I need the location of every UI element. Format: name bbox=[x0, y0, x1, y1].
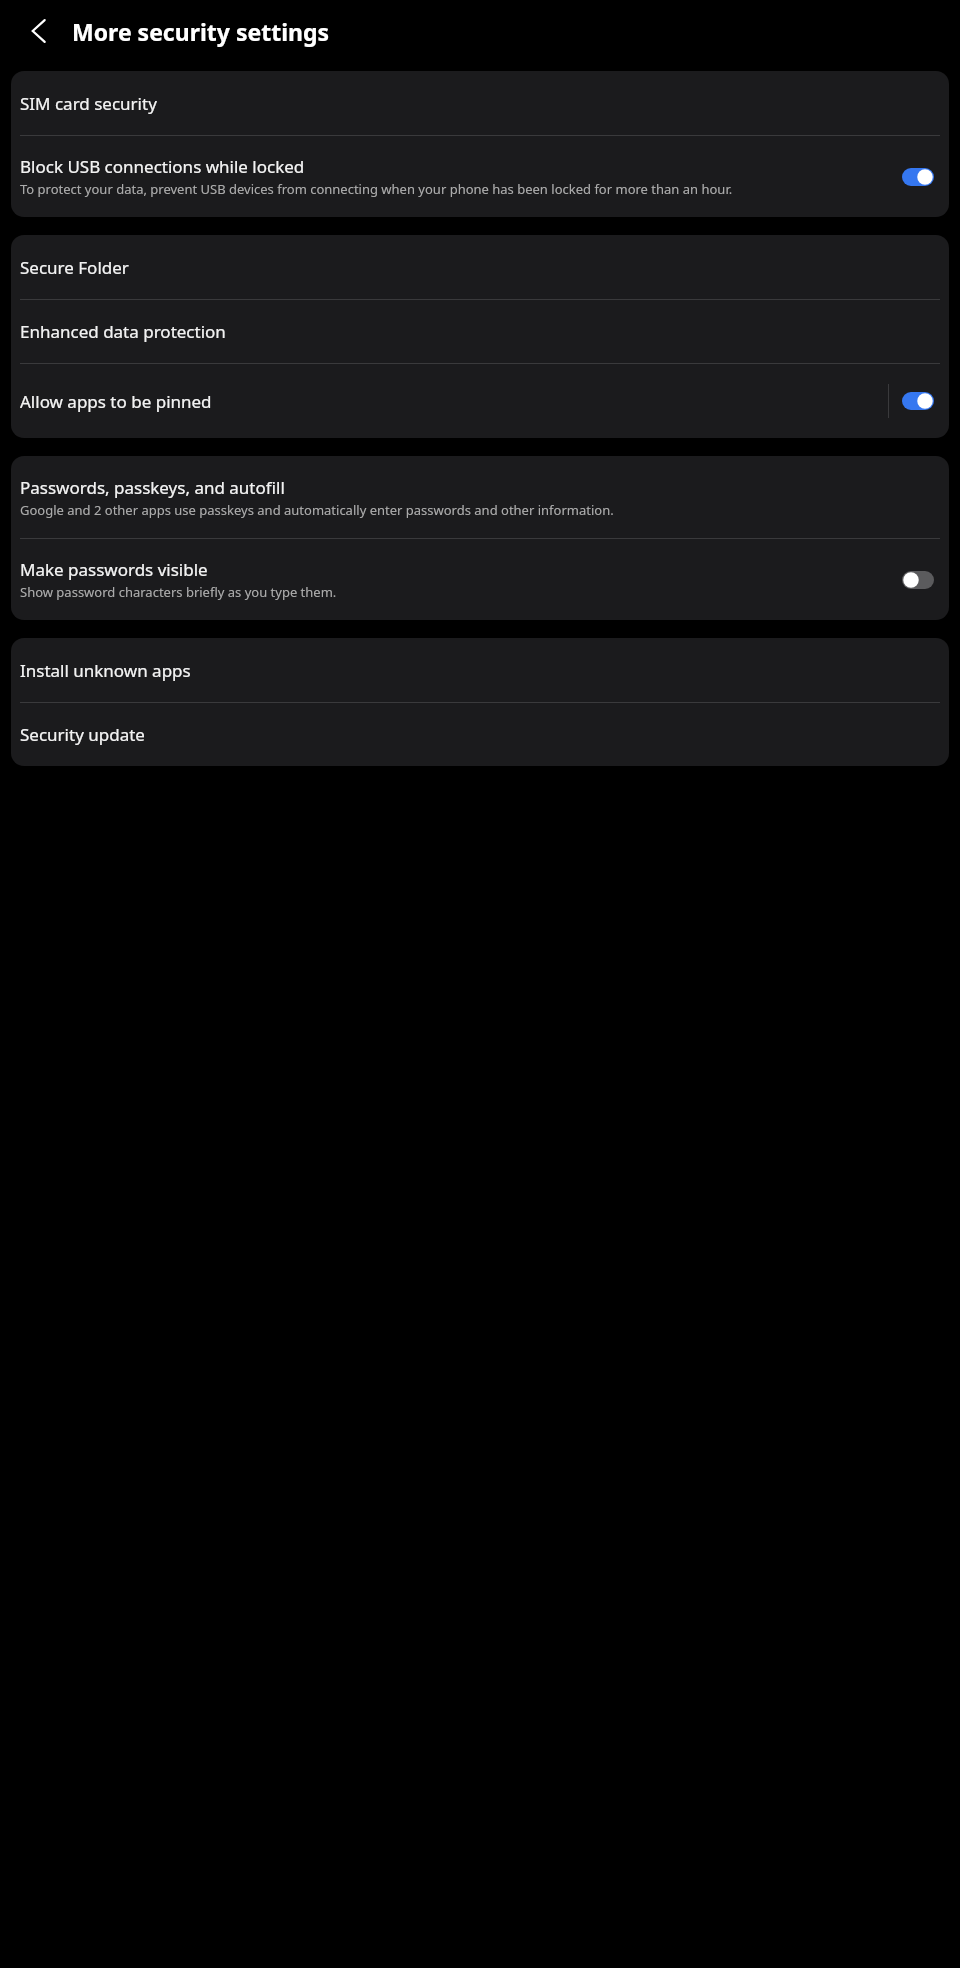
button[interactable]: On bbox=[895, 386, 941, 416]
staticText: Enhanced data protection bbox=[20, 320, 226, 343]
button[interactable]: Install unknown apps bbox=[11, 638, 949, 702]
button[interactable]: Make passwords visible bbox=[11, 539, 949, 620]
staticText: Security update bbox=[20, 723, 145, 746]
button[interactable]: SIM card security bbox=[11, 71, 949, 135]
button[interactable]: Allow apps to be pinned bbox=[11, 364, 949, 438]
staticText: Block USB connections while locked bbox=[20, 155, 305, 178]
staticText: Make passwords visible bbox=[20, 558, 208, 581]
button[interactable]: Security update bbox=[11, 703, 949, 766]
staticText: SIM card security bbox=[20, 92, 157, 115]
button[interactable]: Back bbox=[14, 5, 66, 57]
staticText: To protect your data, prevent USB device… bbox=[20, 180, 733, 198]
staticText: Install unknown apps bbox=[20, 659, 191, 682]
button[interactable]: Enhanced data protection bbox=[11, 300, 949, 363]
staticText: Secure Folder bbox=[20, 256, 129, 279]
staticText: Show password characters briefly as you … bbox=[20, 583, 337, 601]
button[interactable]: Passwords, passkeys, and autofill bbox=[11, 456, 949, 538]
staticText: Passwords, passkeys, and autofill bbox=[20, 476, 285, 499]
button[interactable]: Off bbox=[895, 565, 941, 595]
staticText: Google and 2 other apps use passkeys and… bbox=[20, 501, 614, 519]
staticText: More security settings bbox=[72, 16, 330, 47]
button[interactable]: Block USB connections while locked bbox=[11, 136, 949, 217]
button[interactable]: Secure Folder bbox=[11, 235, 949, 299]
staticText: Allow apps to be pinned bbox=[20, 390, 212, 413]
button[interactable]: On bbox=[895, 162, 941, 192]
